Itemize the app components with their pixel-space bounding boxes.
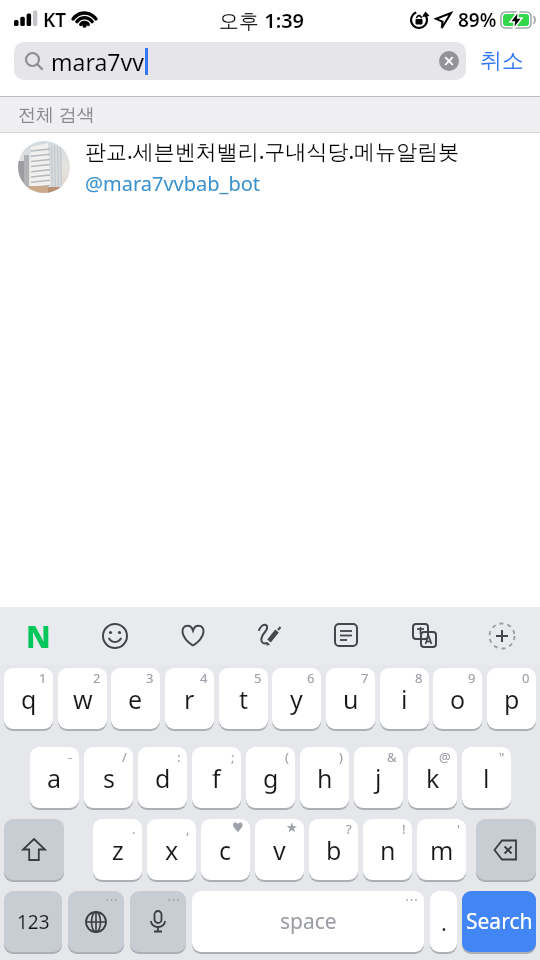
button[interactable]: p bbox=[487, 668, 536, 731]
staticText: : bbox=[177, 748, 181, 766]
staticText: 판교.세븐벤처밸리.구내식당.메뉴알림봇 bbox=[85, 137, 460, 166]
staticText: p bbox=[504, 682, 520, 716]
button[interactable]: c bbox=[201, 819, 250, 882]
button[interactable]: ⋯ bbox=[130, 891, 186, 954]
button[interactable] bbox=[325, 614, 369, 658]
button[interactable] bbox=[476, 819, 536, 882]
staticText: u bbox=[343, 682, 359, 716]
staticText: 전체 검색 bbox=[18, 102, 95, 127]
staticText: / bbox=[122, 748, 127, 766]
button[interactable]: j bbox=[354, 747, 403, 810]
button[interactable] bbox=[480, 614, 524, 658]
button[interactable]: N bbox=[16, 614, 60, 658]
staticText: 2 bbox=[93, 669, 101, 687]
button[interactable]: . bbox=[430, 891, 457, 954]
staticText: 7 bbox=[361, 669, 369, 687]
button[interactable]: x bbox=[147, 819, 196, 882]
button[interactable]: 취소 bbox=[466, 47, 528, 75]
staticText: ? bbox=[346, 820, 352, 838]
staticText: 0 bbox=[522, 669, 530, 687]
staticText: N bbox=[26, 616, 51, 657]
button[interactable]: n bbox=[363, 819, 412, 882]
staticText: ' bbox=[457, 820, 460, 838]
button[interactable] bbox=[171, 614, 215, 658]
button[interactable]: v bbox=[255, 819, 304, 882]
staticText: 89% bbox=[458, 7, 497, 33]
button[interactable]: 123 bbox=[4, 891, 62, 954]
staticText: . bbox=[441, 907, 447, 937]
staticText: ♥ bbox=[232, 820, 244, 835]
staticText: d bbox=[155, 761, 171, 795]
staticText: @mara7vvbab_bot bbox=[85, 170, 261, 197]
staticText: t bbox=[239, 682, 249, 716]
button[interactable]: s bbox=[84, 747, 133, 810]
staticText: 9 bbox=[468, 669, 476, 687]
staticText: x bbox=[165, 833, 179, 867]
staticText: b bbox=[326, 833, 342, 867]
button[interactable]: o bbox=[433, 668, 482, 731]
staticText: 5 bbox=[254, 669, 262, 687]
staticText: e bbox=[128, 682, 143, 716]
button[interactable]: space bbox=[192, 891, 424, 954]
button[interactable]: g bbox=[246, 747, 295, 810]
staticText: c bbox=[219, 833, 232, 867]
staticText: 취소 bbox=[480, 47, 524, 75]
button[interactable]: Search bbox=[462, 891, 536, 954]
staticText: ⋯ bbox=[405, 892, 418, 907]
staticText: " bbox=[499, 748, 505, 766]
button[interactable]: k bbox=[408, 747, 457, 810]
button[interactable]: f bbox=[192, 747, 241, 810]
staticText: s bbox=[103, 761, 115, 795]
staticText: f bbox=[212, 761, 221, 795]
button[interactable] bbox=[403, 614, 447, 658]
staticText: q bbox=[21, 682, 37, 716]
staticText: i bbox=[401, 682, 408, 716]
staticText: mara7vv bbox=[51, 46, 144, 77]
button[interactable]: ⋯ bbox=[68, 891, 124, 954]
staticText: ⋯ bbox=[105, 892, 118, 907]
staticText: 6 bbox=[307, 669, 315, 687]
button[interactable]: t bbox=[219, 668, 268, 731]
button[interactable]: mara7vv bbox=[14, 42, 466, 80]
button[interactable]: r bbox=[165, 668, 214, 731]
button[interactable] bbox=[432, 44, 466, 78]
staticText: h bbox=[317, 761, 333, 795]
button[interactable] bbox=[93, 614, 137, 658]
staticText: 오후 1:39 bbox=[219, 7, 305, 34]
button[interactable]: q bbox=[4, 668, 53, 731]
staticText: r bbox=[184, 682, 195, 716]
button[interactable]: i bbox=[380, 668, 429, 731]
button[interactable]: w bbox=[58, 668, 107, 731]
button[interactable]: m bbox=[417, 819, 466, 882]
staticText: ★ bbox=[286, 820, 298, 835]
staticText: v bbox=[273, 833, 286, 867]
staticText: & bbox=[387, 748, 397, 766]
staticText: ! bbox=[402, 820, 406, 838]
staticText: 1 bbox=[39, 669, 47, 687]
button[interactable]: y bbox=[272, 668, 321, 731]
staticText: w bbox=[73, 682, 93, 716]
button[interactable] bbox=[248, 614, 292, 658]
staticText: - bbox=[68, 748, 73, 766]
button[interactable]: z bbox=[93, 819, 142, 882]
staticText: , bbox=[186, 820, 190, 838]
button[interactable]: a bbox=[30, 747, 79, 810]
staticText: Search bbox=[466, 907, 533, 936]
button[interactable]: b bbox=[309, 819, 358, 882]
button[interactable]: 판교.세븐벤처밸리.구내식당.메뉴알림봇 bbox=[0, 133, 540, 201]
staticText: k bbox=[426, 761, 440, 795]
button[interactable]: h bbox=[300, 747, 349, 810]
staticText: ( bbox=[285, 748, 289, 766]
staticText: ⋯ bbox=[167, 892, 180, 907]
staticText: 4 bbox=[200, 669, 208, 687]
button[interactable]: l bbox=[462, 747, 511, 810]
button[interactable] bbox=[4, 819, 64, 882]
button[interactable]: d bbox=[138, 747, 187, 810]
staticText: z bbox=[112, 833, 124, 867]
staticText: o bbox=[450, 682, 466, 716]
button[interactable]: u bbox=[326, 668, 375, 731]
staticText: m bbox=[430, 833, 454, 867]
staticText: g bbox=[263, 761, 279, 795]
button[interactable]: e bbox=[111, 668, 160, 731]
staticText: KT bbox=[43, 7, 67, 33]
